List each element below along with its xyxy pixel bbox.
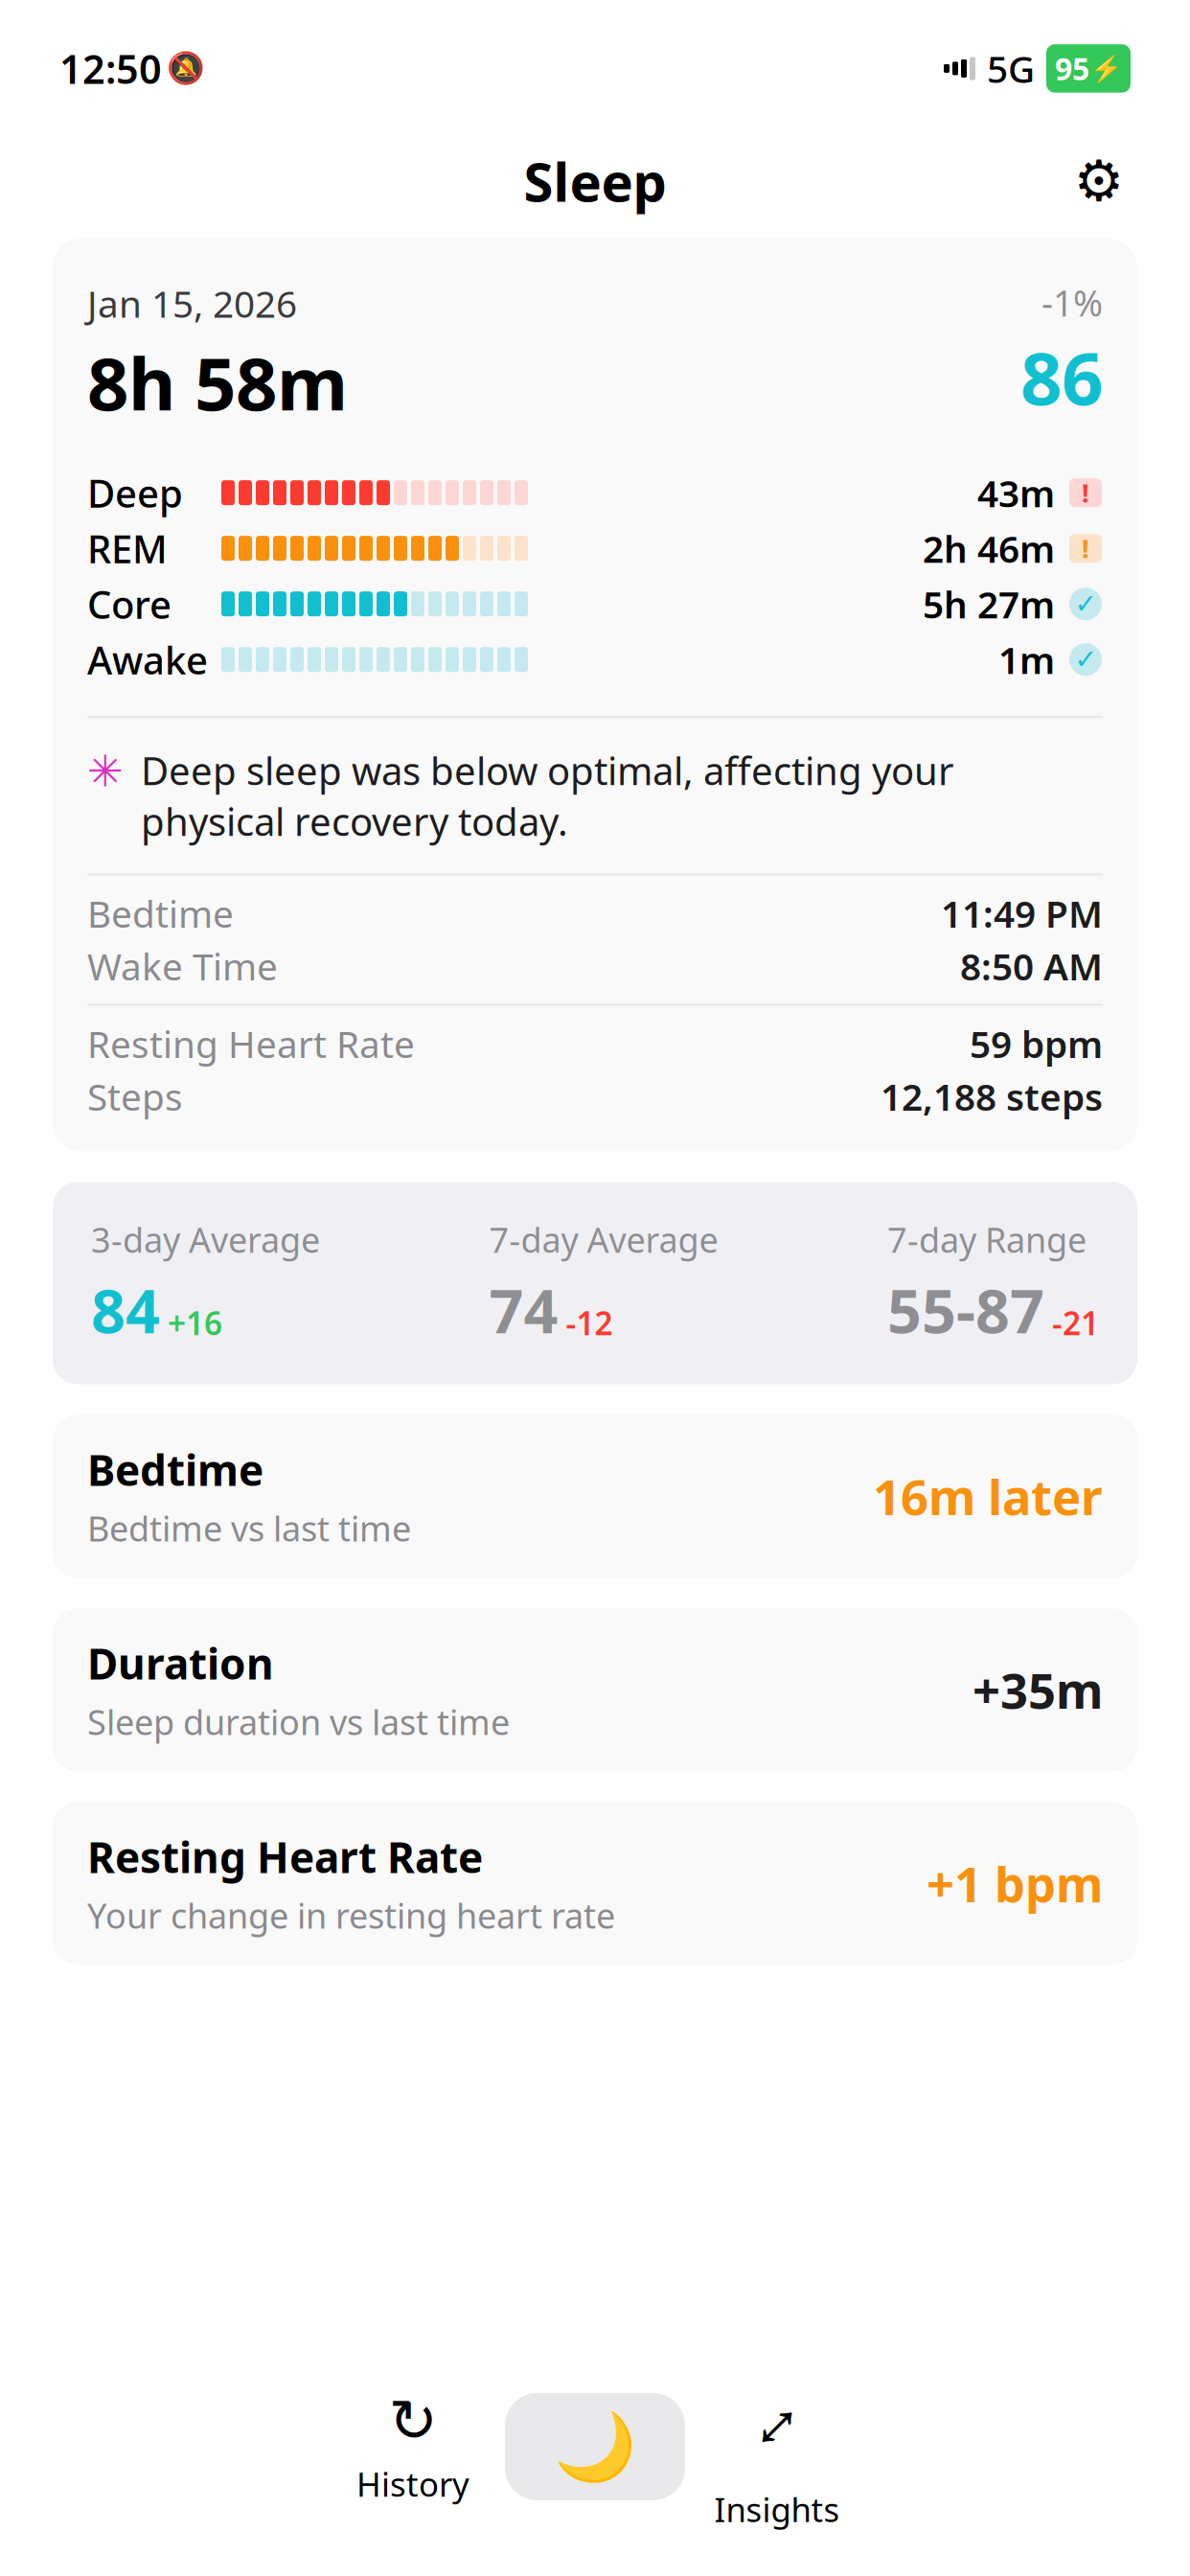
staticText: ✓ bbox=[1075, 644, 1097, 675]
staticText: Sleep bbox=[524, 145, 666, 217]
staticText: 5h 27m bbox=[923, 579, 1055, 628]
staticText: 🔕 bbox=[167, 51, 205, 86]
button[interactable]: ↻ bbox=[327, 2384, 499, 2509]
staticText: 16m later bbox=[873, 1464, 1103, 1529]
staticText: +1 bpm bbox=[927, 1851, 1103, 1916]
staticText: ↻ bbox=[389, 2387, 437, 2454]
staticText: ! bbox=[1082, 476, 1089, 510]
button[interactable]: ⤢ bbox=[691, 2384, 863, 2509]
staticText: REM bbox=[87, 523, 168, 574]
staticText: -12 bbox=[566, 1302, 613, 1344]
button[interactable]: Sleep bbox=[499, 2384, 691, 2509]
staticText: 55-87 bbox=[887, 1270, 1044, 1350]
button[interactable]: Duration bbox=[53, 1608, 1137, 1771]
staticText: ✳ bbox=[87, 747, 124, 796]
button[interactable]: Resting Heart Rate bbox=[53, 1802, 1137, 1965]
staticText: ⚙ bbox=[1074, 149, 1124, 213]
staticText: 🌙 bbox=[554, 2409, 636, 2485]
staticText: ! bbox=[1082, 531, 1089, 565]
staticText: ⤢ bbox=[755, 2362, 799, 2479]
staticText: 12,188 steps bbox=[881, 1072, 1103, 1121]
staticText: 74 bbox=[489, 1270, 558, 1350]
staticText: Resting Heart Rate bbox=[87, 1829, 483, 1885]
staticText: 12:50 bbox=[59, 42, 162, 95]
staticText: 84 bbox=[91, 1270, 160, 1350]
staticText: Deep bbox=[87, 467, 183, 518]
staticText: ✓ bbox=[1075, 589, 1097, 619]
staticText: 2h 46m bbox=[923, 524, 1055, 573]
staticText: -1% bbox=[1041, 279, 1103, 326]
staticText: 8:50 AM bbox=[960, 941, 1103, 990]
button[interactable]: Settings bbox=[1059, 141, 1139, 221]
staticText: 59 bpm bbox=[970, 1019, 1103, 1068]
button[interactable]: Bedtime bbox=[53, 1415, 1137, 1578]
staticText: 86 bbox=[1020, 328, 1103, 425]
staticText: 1m bbox=[998, 635, 1055, 684]
staticText: 8h 58m bbox=[87, 334, 348, 430]
staticText: Core bbox=[87, 578, 172, 629]
staticText: -21 bbox=[1052, 1302, 1099, 1344]
staticText: Deep sleep was below optimal, affecting … bbox=[141, 745, 954, 847]
staticText: Bedtime vs last time bbox=[87, 1505, 411, 1551]
staticText: Jan 15, 2026 bbox=[87, 279, 297, 328]
staticText: Bedtime bbox=[87, 1442, 263, 1498]
staticText: Insights bbox=[714, 2487, 840, 2531]
staticText: 11:49 PM bbox=[941, 889, 1103, 938]
staticText: Sleep duration vs last time bbox=[87, 1699, 510, 1745]
staticText: 95 bbox=[1055, 48, 1089, 89]
staticText: Your change in resting heart rate bbox=[87, 1892, 615, 1938]
staticText: +35m bbox=[973, 1658, 1103, 1722]
staticText: 43m bbox=[977, 468, 1055, 517]
staticText: Steps bbox=[87, 1072, 183, 1121]
staticText: ⚡ bbox=[1090, 54, 1122, 83]
staticText: Awake bbox=[87, 634, 208, 685]
staticText: Duration bbox=[87, 1635, 274, 1691]
staticText: History bbox=[356, 2462, 469, 2506]
staticText: 5G bbox=[987, 44, 1035, 93]
staticText: 3-day Average bbox=[91, 1217, 320, 1262]
staticText: Bedtime bbox=[87, 889, 234, 938]
staticText: Wake Time bbox=[87, 941, 278, 990]
staticText: 7-day Average bbox=[489, 1217, 718, 1262]
staticText: Resting Heart Rate bbox=[87, 1019, 415, 1068]
staticText: 7-day Range bbox=[887, 1217, 1087, 1262]
staticText: +16 bbox=[168, 1302, 222, 1344]
